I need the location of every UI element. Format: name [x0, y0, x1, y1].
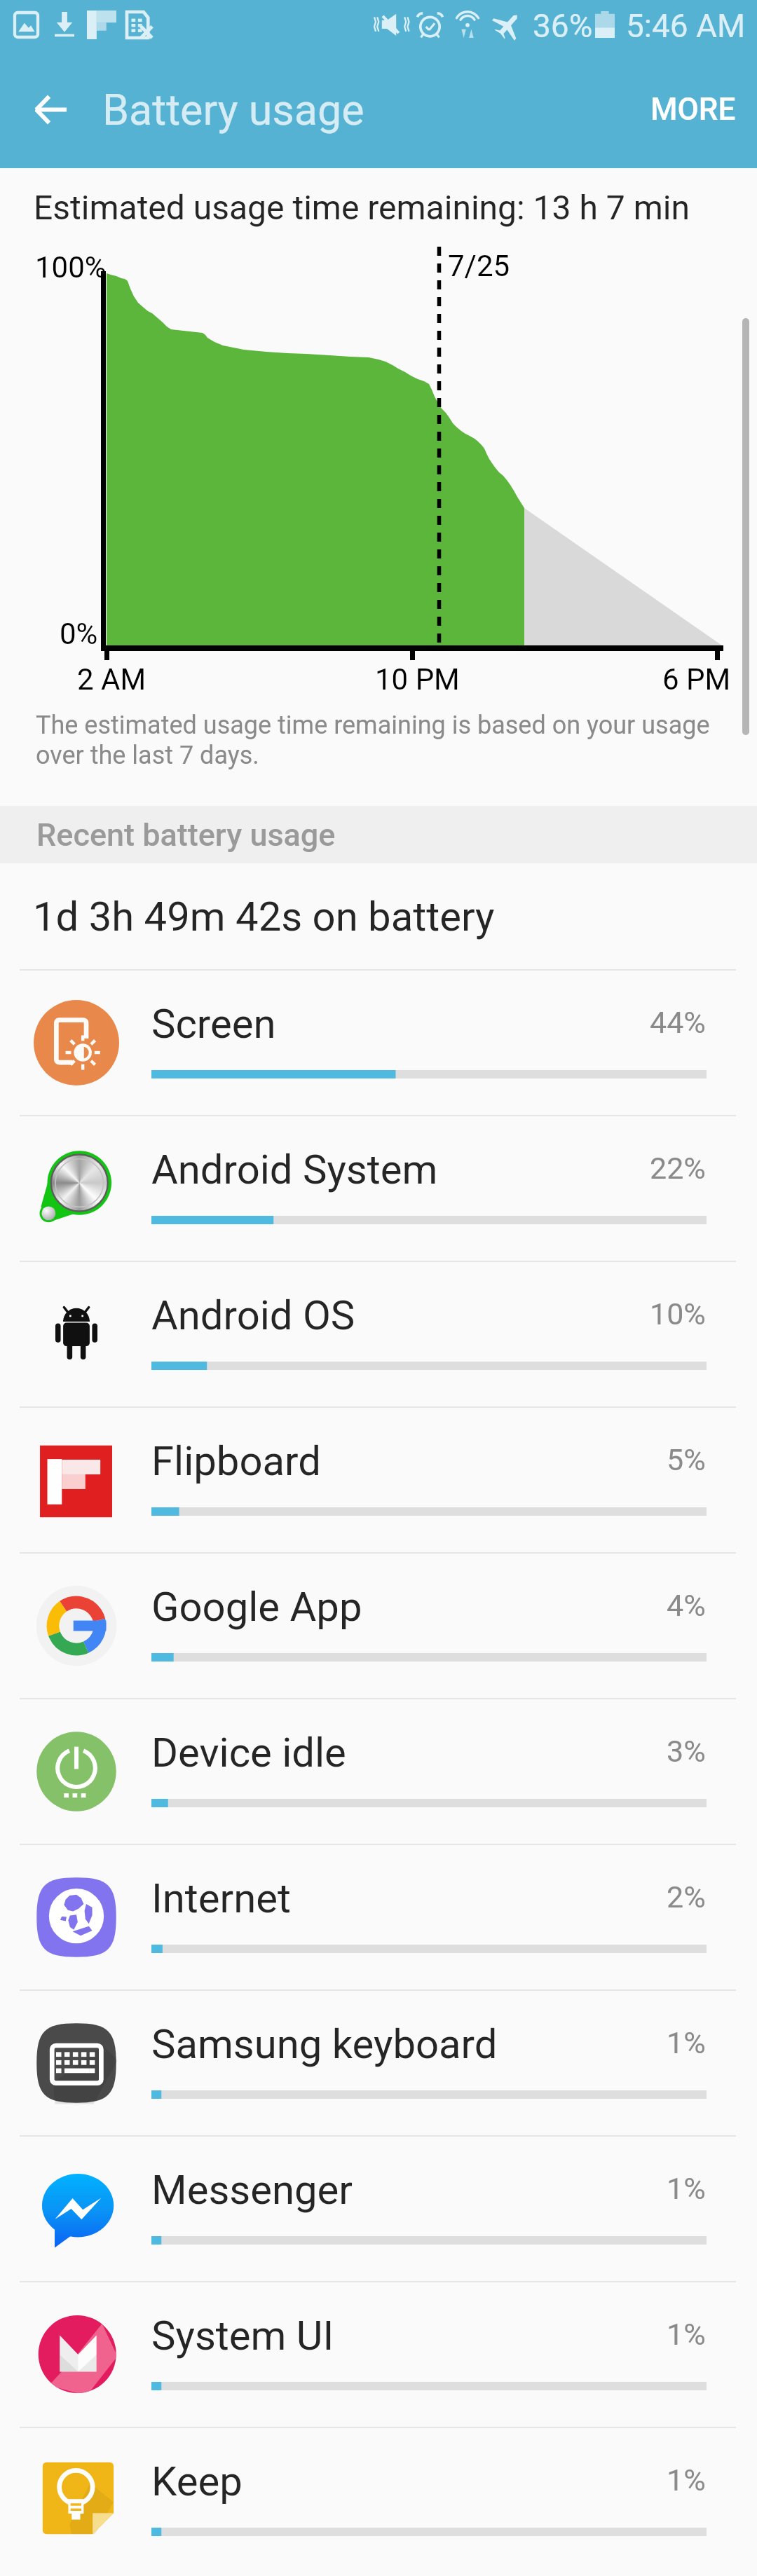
staticText: 10%	[650, 1296, 706, 1331]
staticText: Samsung keyboard	[151, 2020, 498, 2068]
staticText: 1%	[667, 2171, 706, 2206]
staticText: 5:46 AM	[626, 7, 746, 45]
button[interactable]: Flipboard	[0, 1406, 757, 1552]
staticText: 100%	[35, 250, 107, 285]
staticText: MORE	[650, 91, 736, 128]
staticText: Android OS	[151, 1292, 355, 1339]
staticText: 44%	[650, 1005, 706, 1040]
button[interactable]: Device idle	[0, 1698, 757, 1844]
staticText: Keep	[151, 2458, 243, 2505]
staticText: 3%	[667, 1734, 706, 1769]
staticText: Google App	[151, 1583, 362, 1631]
staticText: 5%	[667, 1442, 706, 1477]
staticText: 0%	[60, 617, 98, 651]
staticText: Flipboard	[151, 1437, 321, 1485]
button[interactable]: System UI	[0, 2281, 757, 2427]
staticText: 22%	[650, 1151, 706, 1186]
button[interactable]: Screen	[0, 969, 757, 1115]
button[interactable]: Keep	[0, 2427, 757, 2572]
button[interactable]: Google App	[0, 1552, 757, 1698]
button[interactable]: Internet	[0, 1844, 757, 1989]
button[interactable]: MORE	[629, 74, 757, 144]
staticText: 1%	[667, 2317, 706, 2352]
button[interactable]: Android System	[0, 1115, 757, 1261]
staticText: Android System	[151, 1146, 438, 1193]
staticText: 4%	[667, 1588, 706, 1623]
staticText: 7/25	[448, 249, 510, 283]
button[interactable]: Samsung keyboard	[0, 1989, 757, 2135]
staticText: 36%	[533, 7, 593, 45]
staticText: Recent battery usage	[36, 816, 336, 854]
button[interactable]: Android OS	[0, 1261, 757, 1406]
staticText: Messenger	[151, 2166, 353, 2214]
staticText: Estimated usage time remaining: 13 h 7 m…	[34, 188, 690, 227]
staticText: 1%	[667, 2025, 706, 2060]
staticText: 6 PM	[662, 662, 731, 697]
staticText: Screen	[151, 1000, 276, 1048]
staticText: System UI	[151, 2312, 334, 2359]
staticText: 1%	[667, 2462, 706, 2498]
staticText: Internet	[151, 1875, 291, 1922]
staticText: The estimated usage time remaining is ba…	[36, 711, 710, 770]
button[interactable]: Messenger	[0, 2135, 757, 2281]
button[interactable]: Navigate up	[8, 67, 93, 151]
staticText: 2%	[667, 1879, 706, 1914]
staticText: 1d 3h 49m 42s on battery	[33, 893, 495, 940]
staticText: 2 AM	[77, 662, 146, 697]
staticText: Device idle	[151, 1729, 346, 1776]
staticText: 10 PM	[375, 662, 460, 697]
staticText: Battery usage	[102, 85, 364, 135]
